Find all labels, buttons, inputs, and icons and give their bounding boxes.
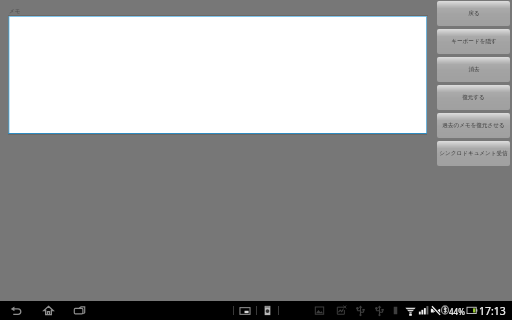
staticText: シンクロドキュメント受信 [439, 150, 508, 157]
staticText: 戻る [468, 10, 480, 17]
button[interactable]: キーボードを隠す [437, 29, 510, 54]
staticText: 過去のメモを復元させる [442, 122, 505, 129]
button[interactable]: 過去のメモを復元させる [437, 113, 510, 138]
button[interactable]: シンクロドキュメント受信 [437, 141, 510, 166]
button[interactable]: 消去 [437, 57, 510, 82]
button[interactable]: Screenshot [238, 304, 252, 318]
staticText: キーボードを隠す [451, 38, 497, 45]
staticText: 復元する [462, 94, 485, 101]
button[interactable]: Recent apps [71, 302, 88, 319]
button[interactable]: Device [261, 304, 274, 317]
button[interactable]: Home [40, 302, 57, 319]
button[interactable]: Back [8, 302, 25, 319]
button[interactable] [8, 16, 427, 134]
button[interactable]: 復元する [437, 85, 510, 110]
button[interactable]: 戻る [437, 1, 510, 26]
staticText: メモ [9, 8, 21, 15]
staticText: 消去 [468, 66, 480, 73]
staticText: 44% [449, 306, 465, 317]
staticText: 17:13 [479, 304, 506, 318]
